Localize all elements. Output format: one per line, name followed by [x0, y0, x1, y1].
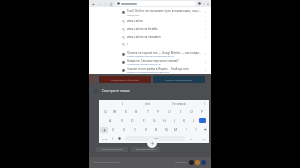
staticText: Панель нет одной ток — Googl Market — ка… — [127, 51, 202, 55]
button[interactable]: Slash — [109, 134, 116, 143]
staticText: По умолчанию здесь — [101, 148, 124, 151]
button[interactable]: Profile — [197, 1, 202, 6]
button[interactable]: Back — [90, 1, 96, 7]
staticText: support.google.com/chrome/answer/95414 — [127, 55, 175, 58]
staticText: N — [165, 127, 168, 132]
staticText: A — [109, 118, 112, 123]
button[interactable]: Emoji — [116, 134, 123, 143]
button[interactable]: Продолжить в браузере — [99, 76, 151, 83]
button[interactable]: G — [149, 116, 159, 125]
staticText: Ещё один вариант — [136, 148, 156, 151]
staticText: L — [193, 118, 195, 123]
staticText: D — [131, 118, 134, 123]
button[interactable]: ?123 — [100, 134, 109, 143]
button[interactable]: Панель нет одной ток — Googl Market — ка… — [89, 50, 211, 58]
button[interactable]: Z — [108, 125, 119, 134]
button[interactable]: L — [189, 116, 199, 125]
button[interactable]: C — [130, 125, 141, 134]
button[interactable]: Forward — [96, 1, 102, 7]
button[interactable]: T — [142, 107, 153, 116]
button[interactable]: имя сайта на бейби — [89, 25, 211, 33]
button[interactable]: По умолчанию здесь — [96, 147, 128, 152]
button[interactable]: Comma — [187, 134, 195, 143]
button[interactable]: P — [197, 107, 208, 116]
button[interactable]: Action — [201, 160, 206, 165]
button[interactable]: Y — [153, 107, 164, 116]
button[interactable]: U — [164, 107, 175, 116]
staticText: i — [127, 42, 128, 46]
button[interactable]: имя сайта — [89, 17, 211, 25]
button[interactable]: M — [171, 125, 181, 134]
staticText: F — [143, 118, 145, 123]
button[interactable]: Action — [189, 160, 194, 165]
staticText: ! — [186, 127, 187, 132]
button[interactable]: B — [151, 125, 161, 134]
staticText: имя сайта на экзамен — [127, 35, 204, 39]
button[interactable]: F — [138, 116, 149, 125]
button[interactable]: Ещё один вариант — [131, 147, 160, 152]
staticText: ?123 — [102, 137, 108, 140]
button[interactable]: V — [141, 125, 151, 134]
button[interactable]: H — [159, 116, 169, 125]
button[interactable]: Reload — [108, 1, 114, 7]
button[interactable]: Q — [100, 107, 110, 116]
staticText: I — [122, 102, 124, 106]
staticText: M — [174, 127, 178, 132]
button[interactable]: Shift — [100, 127, 108, 133]
staticText: ? — [195, 127, 197, 132]
button[interactable]: Extensions — [202, 2, 206, 6]
button[interactable]: Search — [199, 118, 206, 123]
staticText: J — [174, 118, 175, 123]
staticText: X — [123, 127, 126, 132]
staticText: O — [190, 109, 193, 114]
staticText: yandex.ru/support/browser/index.html — [127, 71, 170, 74]
staticText: Y — [157, 109, 160, 114]
staticText: P — [201, 109, 204, 114]
button[interactable]: Enter — [200, 134, 208, 143]
staticText: Смотрите также — [102, 88, 131, 93]
button[interactable]: I — [175, 107, 186, 116]
staticText: имя сайта на бейби — [127, 27, 204, 31]
staticText: подробнее — [175, 161, 187, 164]
button[interactable]: X — [119, 125, 130, 134]
button[interactable]: More options — [206, 2, 210, 6]
staticText: S — [121, 118, 123, 123]
button[interactable]: Открыть в приложении — [153, 76, 205, 83]
button[interactable]: R — [131, 107, 142, 116]
button[interactable]: i — [89, 41, 211, 47]
button[interactable]: Add — [147, 138, 157, 148]
staticText: H — [163, 118, 166, 123]
button[interactable]: Найдено: Сколько персонал знаний? — [89, 58, 211, 66]
button[interactable]: имя сайта на экзамен — [89, 33, 211, 41]
staticText: . — [197, 137, 198, 141]
staticText: Q — [104, 109, 107, 114]
button[interactable]: D — [127, 116, 138, 125]
button[interactable]: Action — [195, 160, 200, 165]
button[interactable]: ! — [181, 125, 191, 134]
button[interactable]: N — [161, 125, 171, 134]
button[interactable]: S — [116, 116, 127, 125]
staticText: G — [153, 118, 156, 123]
staticText: dostoi.com — [127, 13, 140, 16]
staticText: / — [112, 137, 114, 141]
staticText: Z — [112, 127, 115, 132]
button[interactable]: K — [179, 116, 189, 125]
staticText: — — [190, 137, 193, 141]
button[interactable]: Space — [125, 136, 185, 141]
button[interactable]: Home — [102, 1, 108, 7]
button[interactable]: W — [110, 107, 120, 116]
button[interactable]: A — [105, 116, 116, 125]
staticText: Продолжить в браузере — [111, 78, 139, 81]
button[interactable]: Знание и настройка в Яндекс - Tradings.c… — [89, 66, 211, 74]
button[interactable]: Tooll Online не начинает путь в навигаци… — [89, 8, 211, 17]
button[interactable]: Backspace — [201, 125, 209, 134]
button[interactable]: E — [120, 107, 131, 116]
staticText: K — [183, 118, 186, 123]
staticText: E — [125, 109, 127, 114]
button[interactable] — [116, 1, 196, 6]
button[interactable]: ? — [191, 125, 201, 134]
button[interactable]: O — [186, 107, 197, 116]
button[interactable]: J — [169, 116, 179, 125]
staticText: имя сайта — [127, 19, 204, 23]
